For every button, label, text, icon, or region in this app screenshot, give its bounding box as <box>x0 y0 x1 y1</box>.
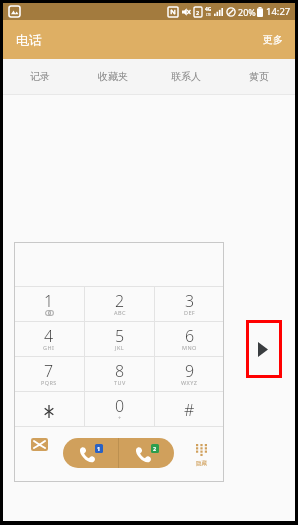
staticText: MNO <box>182 344 197 351</box>
button[interactable]: 更多 <box>251 20 295 59</box>
button[interactable]: Message <box>23 430 55 458</box>
staticText: 9 <box>185 360 195 382</box>
button[interactable]: 记录 <box>3 59 76 94</box>
staticText: 更多 <box>263 33 283 46</box>
staticText: 收藏夹 <box>98 70 128 83</box>
button[interactable]: 5 <box>85 322 154 356</box>
button[interactable]: Call SIM 2 <box>119 438 174 468</box>
staticText: 1 <box>44 290 54 312</box>
staticText: JKL <box>115 344 124 351</box>
button[interactable]: 4 <box>14 322 84 356</box>
button[interactable]: 0 <box>85 392 154 426</box>
staticText: 隐藏 <box>196 460 207 467</box>
staticText: 2 <box>115 290 125 312</box>
button[interactable]: 黄页 <box>222 59 295 94</box>
button[interactable]: Hide keypad <box>180 430 222 475</box>
staticText: 2 <box>196 9 200 16</box>
staticText: PQRS <box>41 379 57 386</box>
staticText: 1 <box>97 445 101 452</box>
staticText: GHI <box>43 344 55 351</box>
button[interactable]: # <box>155 392 224 426</box>
staticText: 20% <box>238 6 256 18</box>
staticText: 6 <box>185 325 195 347</box>
staticText: WXYZ <box>181 379 198 386</box>
button[interactable]: 1 <box>14 287 84 321</box>
button[interactable]: 6 <box>155 322 224 356</box>
staticText: ABC <box>114 309 126 316</box>
button[interactable]: 9 <box>155 357 224 391</box>
button[interactable]: 3 <box>155 287 224 321</box>
button[interactable]: 8 <box>85 357 154 391</box>
staticText: 4 <box>44 325 54 347</box>
button[interactable] <box>14 392 84 426</box>
staticText: 0 <box>115 395 125 417</box>
staticText: 8 <box>115 360 125 382</box>
staticText: 2 <box>153 445 157 452</box>
staticText: 联系人 <box>171 70 201 83</box>
button[interactable]: 联系人 <box>149 59 222 94</box>
staticText: LTE <box>206 13 211 17</box>
staticText: 5 <box>115 325 125 347</box>
staticText: 记录 <box>30 70 50 83</box>
button[interactable]: 7 <box>14 357 84 391</box>
staticText: 7 <box>44 360 54 382</box>
button[interactable]: Call SIM 1 <box>63 438 118 468</box>
button[interactable]: Expand <box>246 320 282 378</box>
staticText: 黄页 <box>249 70 269 83</box>
staticText: 3 <box>185 290 195 312</box>
staticText: 电话 <box>16 32 42 48</box>
staticText: # <box>184 399 195 421</box>
button[interactable]: 收藏夹 <box>76 59 149 94</box>
button[interactable]: 2 <box>85 287 154 321</box>
staticText: 14:27 <box>266 5 291 18</box>
staticText: DEF <box>184 309 196 316</box>
staticText: TUV <box>114 379 126 386</box>
staticText: 4G <box>205 6 212 13</box>
staticText: + <box>118 414 122 421</box>
